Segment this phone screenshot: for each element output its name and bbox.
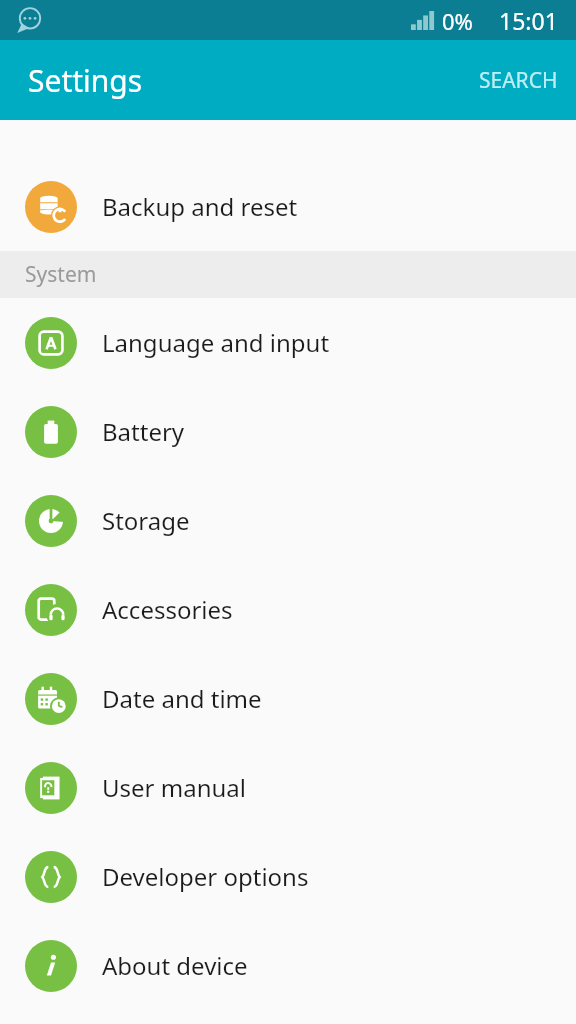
button[interactable]: Battery [0, 387, 576, 476]
button[interactable]: Backup and reset [0, 162, 576, 251]
button[interactable]: Date and time [0, 654, 576, 743]
staticText: Backup and reset [102, 190, 298, 223]
staticText: Battery [102, 415, 185, 448]
staticText: 15:01 [499, 5, 558, 36]
staticText: System [25, 260, 97, 289]
staticText: Developer options [102, 860, 309, 893]
staticText: Settings [28, 60, 143, 101]
staticText: Storage [102, 504, 190, 537]
button[interactable]: About device [0, 921, 576, 1010]
staticText: SEARCH [479, 66, 558, 95]
staticText: 0% [442, 6, 473, 36]
button[interactable]: Storage [0, 476, 576, 565]
button[interactable]: User manual [0, 743, 576, 832]
staticText: Date and time [102, 682, 262, 715]
staticText: User manual [102, 771, 246, 804]
button[interactable]: Language and input [0, 298, 576, 387]
button[interactable]: SEARCH [461, 50, 576, 111]
button[interactable]: Accessories [0, 565, 576, 654]
staticText: Accessories [102, 593, 233, 626]
staticText: Language and input [102, 326, 330, 359]
button[interactable]: Developer options [0, 832, 576, 921]
staticText: About device [102, 949, 248, 982]
